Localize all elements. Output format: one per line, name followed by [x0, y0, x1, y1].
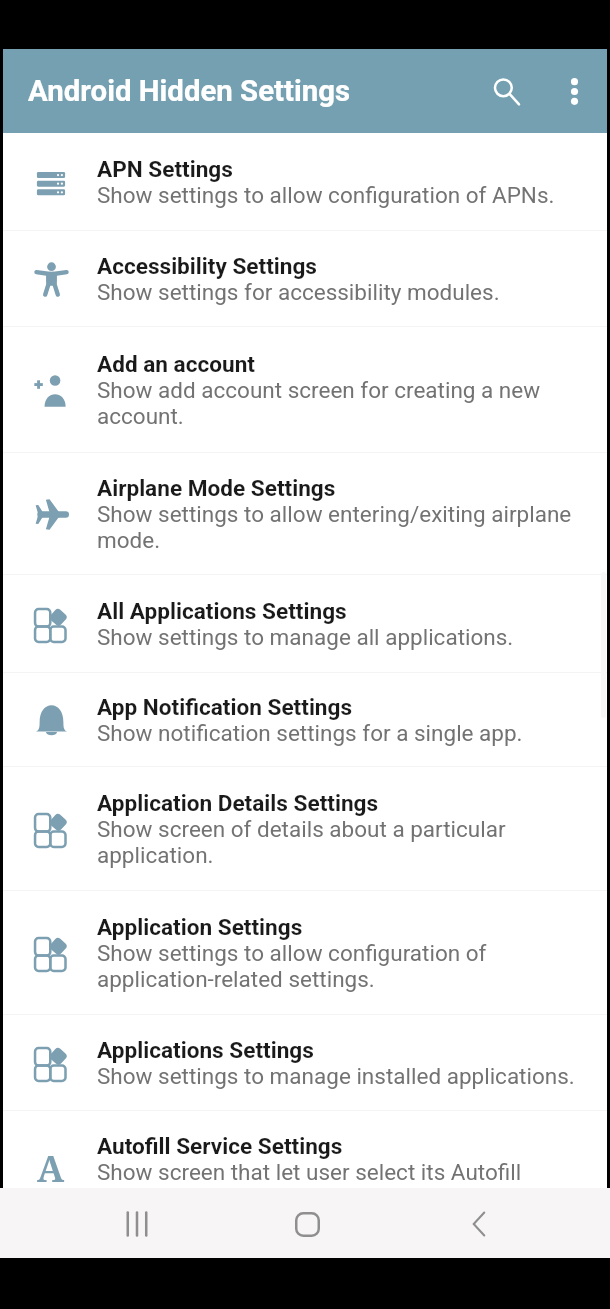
staticText: Show settings to manage installed applic…: [97, 1063, 575, 1089]
button[interactable]: Accessibility Settings: [3, 231, 607, 326]
button[interactable]: App Notification Settings: [3, 673, 607, 766]
button[interactable]: Add an account: [3, 327, 607, 452]
button[interactable]: All Applications Settings: [3, 575, 607, 672]
staticText: Autofill Service Settings: [97, 1133, 343, 1159]
button[interactable]: Application Details Settings: [3, 767, 607, 890]
staticText: Add an account: [97, 351, 255, 377]
staticText: Show screen of details about a particula…: [97, 816, 506, 842]
button[interactable]: APN Settings: [3, 133, 607, 230]
staticText: Show settings to allow configuration of …: [97, 182, 555, 208]
staticText: Show screen that let user select its Aut…: [97, 1159, 522, 1185]
staticText: mode.: [97, 527, 161, 553]
staticText: Show settings for accessibility modules.: [97, 279, 500, 305]
button[interactable]: Search: [467, 59, 531, 123]
staticText: App Notification Settings: [97, 694, 353, 720]
staticText: Show settings to manage all applications…: [97, 624, 514, 650]
staticText: Application Settings: [97, 914, 303, 940]
button[interactable]: Back: [393, 1188, 564, 1258]
staticText: A: [37, 1144, 65, 1193]
button[interactable]: Applications Settings: [3, 1015, 607, 1110]
button[interactable]: A: [3, 1111, 607, 1207]
staticText: Airplane Mode Settings: [97, 475, 336, 501]
button[interactable]: Home: [222, 1188, 393, 1258]
staticText: Show settings to allow entering/exiting …: [97, 501, 572, 527]
button[interactable]: Application Settings: [3, 891, 607, 1014]
staticText: Show add account screen for creating a n…: [97, 377, 541, 403]
staticText: account.: [97, 403, 184, 429]
staticText: Accessibility Settings: [97, 253, 317, 279]
button[interactable]: More options: [542, 59, 606, 123]
staticText: All Applications Settings: [97, 598, 347, 624]
staticText: Application Details Settings: [97, 790, 379, 816]
staticText: application.: [97, 842, 214, 868]
button[interactable]: Airplane Mode Settings: [3, 453, 607, 574]
staticText: Applications Settings: [97, 1037, 314, 1063]
staticText: Android Hidden Settings: [28, 74, 351, 108]
staticText: APN Settings: [97, 156, 233, 182]
staticText: Show notification settings for a single …: [97, 720, 523, 746]
staticText: Show settings to allow configuration of: [97, 940, 487, 966]
staticText: application-related settings.: [97, 966, 375, 992]
button[interactable]: Recent apps: [52, 1188, 222, 1258]
